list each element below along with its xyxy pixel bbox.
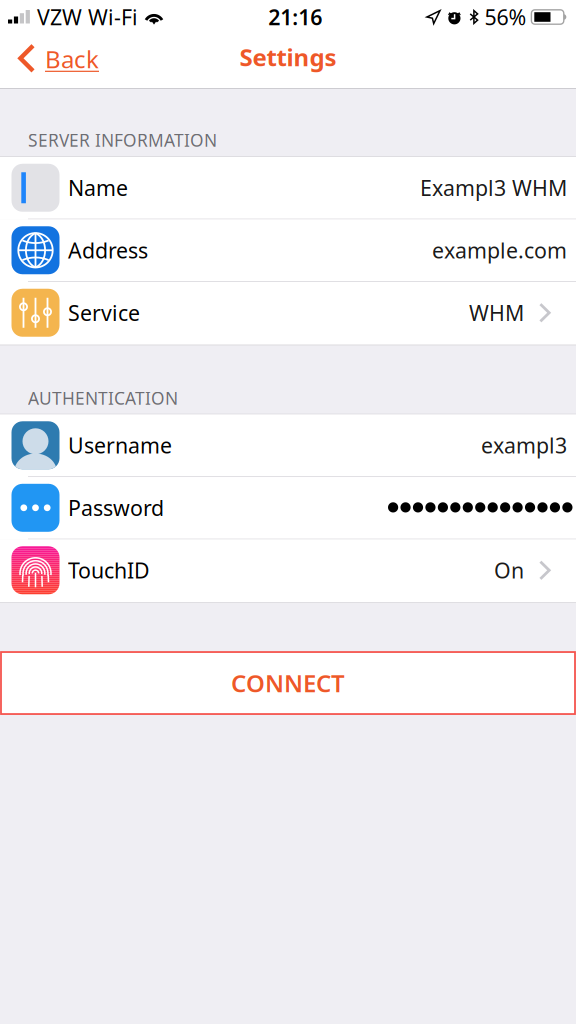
staticText: Back [45, 43, 99, 75]
button[interactable]: CONNECT [1, 652, 575, 714]
staticText: On [494, 556, 524, 584]
staticText: AUTHENTICATION [28, 386, 178, 409]
button[interactable]: Password [0, 477, 576, 539]
staticText: 56% [484, 3, 526, 31]
staticText: Service [68, 299, 140, 327]
staticText: TouchID [68, 556, 150, 584]
staticText: Username [68, 431, 172, 459]
staticText: WHM [469, 299, 524, 327]
button[interactable]: Back [0, 34, 111, 88]
staticText: VZW Wi-Fi [37, 3, 138, 31]
staticText: SERVER INFORMATION [28, 128, 217, 151]
button[interactable]: Address [0, 219, 576, 282]
staticText: Exampl3 WHM [420, 174, 567, 202]
staticText: Address [68, 236, 148, 264]
staticText: exampl3 [481, 431, 567, 459]
button[interactable]: Service [0, 282, 576, 344]
button[interactable]: Name [0, 157, 576, 219]
staticText: Password [68, 494, 164, 522]
button[interactable]: TouchID [0, 539, 576, 602]
staticText: example.com [432, 236, 567, 264]
staticText: 21:16 [268, 3, 322, 31]
button[interactable]: Username [0, 414, 576, 477]
staticText: Settings [239, 41, 336, 73]
staticText: CONNECT [231, 667, 345, 699]
staticText: Name [68, 174, 128, 202]
